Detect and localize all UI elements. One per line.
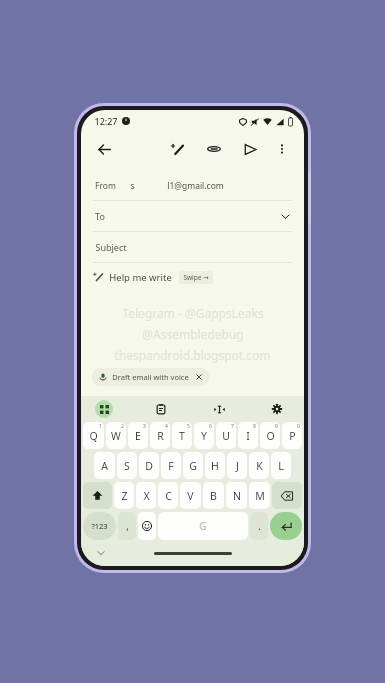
- button[interactable]: Keyboard modes: [95, 400, 113, 418]
- staticText: Z: [121, 489, 128, 503]
- button[interactable]: From: [81, 172, 304, 200]
- staticText: Q: [89, 429, 98, 443]
- staticText: G: [199, 519, 207, 533]
- staticText: 5: [187, 423, 190, 430]
- button[interactable]: Subject: [81, 232, 304, 262]
- staticText: Help me write: [109, 271, 172, 284]
- staticText: Draft email with voice: [112, 372, 189, 382]
- staticText: R: [157, 429, 164, 443]
- button[interactable]: S: [117, 452, 137, 479]
- staticText: A: [101, 459, 108, 473]
- staticText: V: [187, 489, 194, 503]
- button[interactable]: X: [136, 482, 156, 509]
- staticText: 6: [209, 423, 212, 430]
- staticText: C: [165, 489, 172, 503]
- button[interactable]: B: [203, 482, 224, 509]
- button[interactable]: I: [238, 422, 258, 449]
- staticText: 9: [275, 423, 278, 430]
- button[interactable]: M: [249, 482, 270, 509]
- staticText: N: [233, 489, 241, 503]
- staticText: 8: [253, 423, 256, 430]
- button[interactable]: V: [180, 482, 201, 509]
- button[interactable]: Text editing: [210, 400, 228, 418]
- staticText: ,: [126, 519, 129, 533]
- button[interactable]: G: [183, 452, 203, 479]
- staticText: l1@gmail.com: [167, 180, 224, 192]
- button[interactable]: J: [227, 452, 247, 479]
- button[interactable]: Attach file: [201, 136, 227, 162]
- staticText: @Assembledebug: [142, 326, 244, 342]
- button[interactable]: More options: [271, 138, 293, 160]
- button[interactable]: Back: [92, 137, 116, 161]
- staticText: 0: [297, 423, 300, 430]
- button[interactable]: T: [172, 422, 192, 449]
- button[interactable]: R: [150, 422, 170, 449]
- button[interactable]: U: [216, 422, 236, 449]
- button[interactable]: L: [271, 452, 291, 479]
- staticText: 7: [231, 423, 234, 430]
- staticText: U: [222, 429, 230, 443]
- staticText: G: [189, 459, 197, 473]
- button[interactable]: P: [282, 422, 302, 449]
- staticText: ?123: [91, 521, 108, 531]
- button[interactable]: C: [158, 482, 178, 509]
- staticText: I: [246, 429, 250, 443]
- button[interactable]: Comma: [118, 512, 136, 540]
- staticText: W: [111, 429, 121, 443]
- staticText: S: [124, 459, 130, 473]
- staticText: B: [210, 489, 217, 503]
- staticText: 12:27: [94, 115, 118, 127]
- button[interactable]: E: [128, 422, 148, 449]
- staticText: 1: [99, 423, 102, 430]
- button[interactable]: Backspace: [272, 482, 302, 509]
- button[interactable]: G: [158, 512, 248, 540]
- button[interactable]: Q: [83, 422, 104, 449]
- other: Expand recipients: [278, 209, 292, 223]
- staticText: 3: [143, 423, 146, 430]
- button[interactable]: F: [161, 452, 181, 479]
- button[interactable]: Period: [250, 512, 268, 540]
- staticText: T: [179, 429, 185, 443]
- staticText: X: [143, 489, 150, 503]
- button[interactable]: Emoji: [138, 512, 156, 540]
- button[interactable]: ?123: [83, 512, 116, 540]
- staticText: J: [236, 459, 239, 473]
- button[interactable]: D: [139, 452, 159, 479]
- button[interactable]: Help me write: [165, 136, 191, 162]
- staticText: 4: [165, 423, 168, 430]
- staticText: F: [168, 459, 174, 473]
- staticText: M: [255, 489, 265, 503]
- staticText: Telegram - @GappsLeaks: [122, 305, 264, 321]
- button[interactable]: O: [260, 422, 280, 449]
- staticText: L: [278, 459, 284, 473]
- staticText: D: [145, 459, 153, 473]
- staticText: Y: [201, 429, 207, 443]
- button[interactable]: Z: [114, 482, 134, 509]
- button[interactable]: Clipboard: [152, 400, 170, 418]
- button[interactable]: H: [205, 452, 225, 479]
- button[interactable]: W: [106, 422, 126, 449]
- staticText: H: [211, 459, 219, 473]
- staticText: P: [289, 429, 296, 443]
- button[interactable]: Y: [194, 422, 214, 449]
- staticText: To: [95, 210, 105, 222]
- staticText: O: [266, 429, 275, 443]
- staticText: E: [135, 429, 141, 443]
- staticText: From: [95, 180, 116, 192]
- staticText: K: [256, 459, 263, 473]
- button[interactable]: N: [226, 482, 247, 509]
- button[interactable]: Shift: [83, 482, 112, 509]
- button[interactable]: Settings: [268, 400, 286, 418]
- button[interactable]: K: [249, 452, 269, 479]
- staticText: thespandroid.blogspot.com: [114, 347, 271, 363]
- button[interactable]: Draft email with voice: [92, 368, 209, 386]
- button[interactable]: Hide keyboard: [95, 547, 107, 559]
- staticText: .: [258, 519, 261, 533]
- button[interactable]: Help me write: [94, 263, 304, 291]
- button[interactable]: To: [81, 201, 304, 231]
- button[interactable]: A: [94, 452, 115, 479]
- button[interactable]: Send: [237, 136, 263, 162]
- button[interactable]: Enter: [270, 512, 302, 540]
- staticText: 2: [121, 423, 124, 430]
- staticText: Swipe →: [183, 273, 209, 282]
